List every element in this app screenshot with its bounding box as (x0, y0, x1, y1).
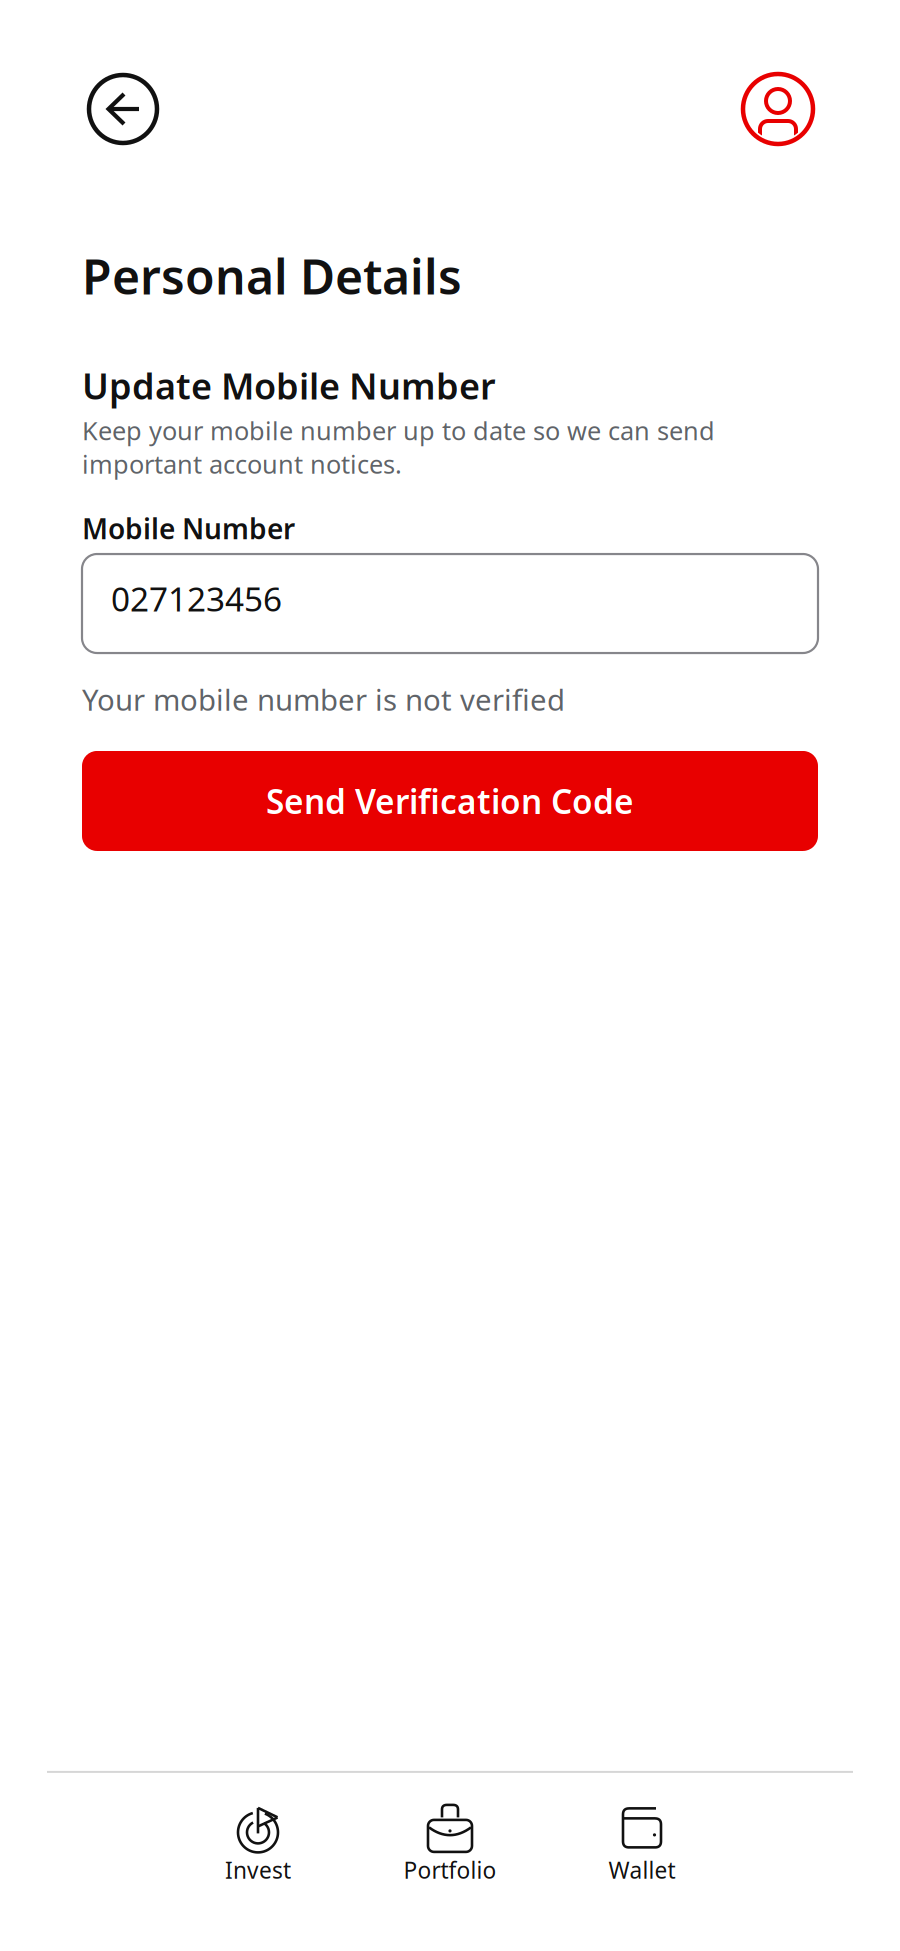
button[interactable]: Wallet (546, 1785, 738, 1885)
staticText: Personal Details (82, 244, 462, 308)
staticText: Send Verification Code (266, 779, 634, 823)
staticText: Update Mobile Number (82, 362, 496, 409)
button[interactable]: Portfolio (354, 1785, 546, 1885)
staticText: Keep your mobile number up to date so we… (82, 413, 715, 481)
button[interactable]: Invest (162, 1785, 354, 1885)
staticText: Invest (225, 1855, 291, 1885)
button[interactable]: Send Verification Code (82, 751, 818, 851)
staticText: Mobile Number (82, 510, 295, 547)
staticText: Wallet (608, 1855, 675, 1885)
staticText: 027123456 (111, 576, 282, 621)
button[interactable]: Back (87, 73, 159, 145)
staticText: Your mobile number is not verified (82, 680, 565, 719)
staticText: Portfolio (403, 1855, 496, 1885)
button[interactable]: Profile (741, 72, 815, 146)
